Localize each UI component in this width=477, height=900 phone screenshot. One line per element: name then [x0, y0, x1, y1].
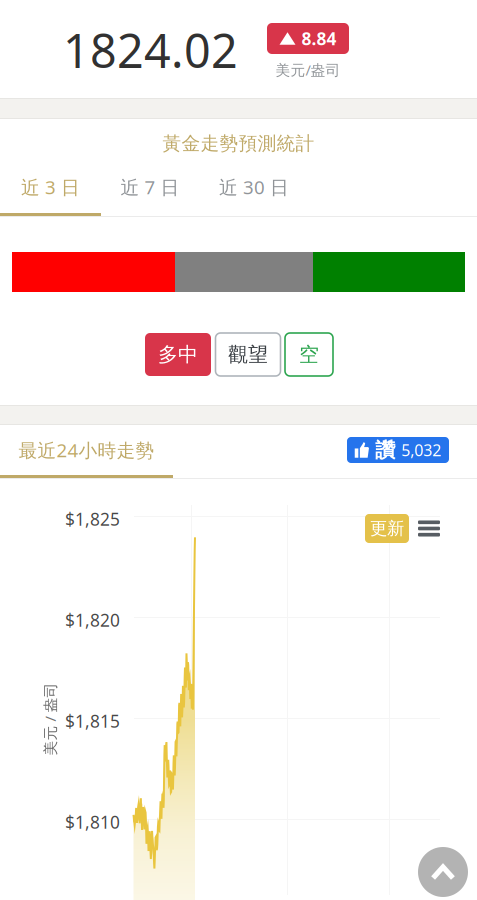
button[interactable]: 近 30 日	[199, 165, 309, 209]
staticText: 1824.02	[63, 19, 238, 81]
button[interactable]: 近 3 日	[0, 165, 101, 209]
staticText: 近 7 日	[120, 175, 179, 199]
staticText: $1,820	[65, 608, 120, 631]
button[interactable]: 讚	[347, 437, 449, 463]
staticText: 空	[299, 342, 319, 367]
staticText: 近 30 日	[219, 175, 289, 199]
button[interactable]: 觀望	[215, 333, 280, 376]
staticText: 多中	[158, 342, 198, 367]
button[interactable]: 更新	[365, 514, 409, 543]
staticText: 近 3 日	[21, 175, 80, 199]
staticText: 更新	[370, 518, 404, 539]
button[interactable]: Scroll to top	[418, 847, 468, 897]
staticText: 最近24小時走勢	[18, 438, 154, 462]
staticText: $1,825	[65, 507, 120, 530]
staticText: $1,815	[65, 709, 120, 732]
staticText: 黃金走勢預測統計	[162, 132, 314, 155]
button[interactable]: 空	[285, 333, 333, 376]
button[interactable]: Chart options	[415, 514, 443, 543]
staticText: 8.84	[301, 27, 336, 50]
staticText: 觀望	[228, 342, 268, 367]
button[interactable]: 多中	[145, 333, 211, 376]
staticText: 美元/盎司	[275, 60, 340, 79]
button[interactable]: 近 7 日	[101, 165, 199, 209]
staticText: 美元 / 盎司	[13, 709, 86, 729]
staticText: $1,810	[65, 810, 120, 833]
staticText: 讚	[375, 438, 395, 462]
button[interactable]: 最近24小時走勢	[0, 425, 173, 475]
staticText: 5,032	[401, 439, 441, 461]
